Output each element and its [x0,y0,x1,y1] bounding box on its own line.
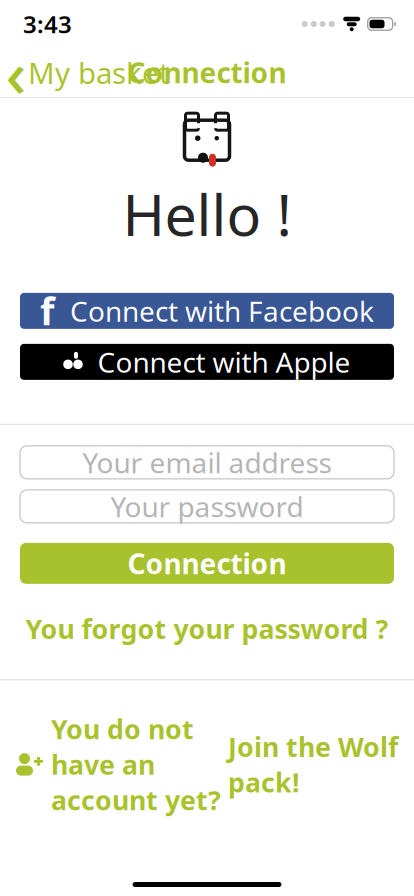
staticText: Connect with Apple [97,343,350,380]
staticText: Hello ! [122,176,291,252]
staticText: f [40,286,54,336]
staticText: Connection [127,545,286,582]
button[interactable]: Connect with Apple [20,344,394,380]
staticText: Connect with Facebook [70,292,374,329]
button[interactable]: f [20,293,394,329]
staticText: Join the Wolf pack! [228,729,398,800]
button[interactable]: You forgot your password ? [20,605,394,652]
button[interactable]: ‹ [0,48,170,97]
staticText: My basket [28,53,170,92]
staticText: Your email address [82,444,331,481]
staticText: You forgot your password ? [25,611,388,646]
staticText: Your password [110,488,303,525]
button[interactable]: Your password [20,490,394,523]
button[interactable]: Your email address [20,446,394,479]
staticText: You do not have an account yet? [51,711,221,817]
staticText: ‹ [5,30,26,115]
button[interactable]: Connection [20,543,394,584]
staticText: 3:43 [23,8,72,40]
staticText: Connection [127,54,286,91]
button[interactable]: You do not have an account yet? [16,701,398,827]
